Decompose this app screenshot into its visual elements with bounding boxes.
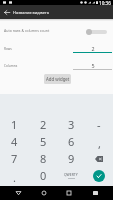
button[interactable]: Switch keyboard	[88, 186, 102, 200]
staticText: 5	[91, 62, 95, 69]
staticText: 3	[68, 117, 75, 132]
button[interactable]: 1	[0, 115, 29, 133]
button[interactable]: 5	[29, 133, 57, 150]
button[interactable]: 7	[0, 150, 29, 167]
staticText: .	[13, 170, 16, 185]
staticText: ,	[98, 136, 101, 151]
staticText: 9	[68, 151, 75, 166]
button[interactable]: 0	[29, 167, 57, 184]
button[interactable]: Auto rows & columns count	[0, 25, 113, 37]
button[interactable]: 5	[73, 61, 112, 72]
staticText: Auto rows & columns count	[4, 28, 50, 33]
button[interactable]: Home	[37, 186, 51, 200]
staticText: 1	[11, 117, 18, 132]
staticText: 7	[11, 151, 18, 166]
button[interactable]: 8	[29, 150, 57, 167]
button[interactable]: Navigate up	[1, 5, 12, 19]
button[interactable]: Recent apps	[62, 186, 76, 200]
staticText: 10:36	[99, 0, 111, 5]
staticText: 5	[40, 134, 47, 149]
staticText: 6	[68, 134, 75, 149]
staticText: 2	[40, 117, 47, 132]
staticText: Название виджета	[13, 10, 49, 15]
button[interactable]: 9	[57, 150, 85, 167]
staticText: Columns	[4, 64, 18, 68]
button[interactable]: .	[0, 167, 29, 184]
button[interactable]: QWERTY	[57, 167, 85, 184]
button[interactable]: 2	[29, 115, 57, 133]
button[interactable]: ,	[85, 133, 113, 150]
button[interactable]: Backspace	[85, 150, 113, 167]
staticText: 4	[11, 134, 18, 149]
other: Backspace	[95, 156, 103, 162]
staticText: Add widget	[46, 76, 70, 82]
button[interactable]: -	[85, 115, 113, 133]
staticText: -	[97, 117, 101, 132]
button[interactable]: 2	[73, 44, 112, 55]
staticText: 0	[40, 168, 47, 183]
button[interactable]: 6	[57, 133, 85, 150]
staticText: 8	[40, 151, 47, 166]
staticText: 2	[91, 45, 95, 52]
button[interactable]: 3	[57, 115, 85, 133]
staticText: QWERTY	[64, 172, 78, 177]
button[interactable]: 4	[0, 133, 29, 150]
staticText: Rows	[4, 47, 12, 51]
button[interactable]: Enter	[85, 167, 113, 184]
button[interactable]: Enter	[93, 170, 105, 182]
button[interactable]: Add widget	[44, 74, 71, 84]
button[interactable]: Back	[11, 186, 25, 200]
